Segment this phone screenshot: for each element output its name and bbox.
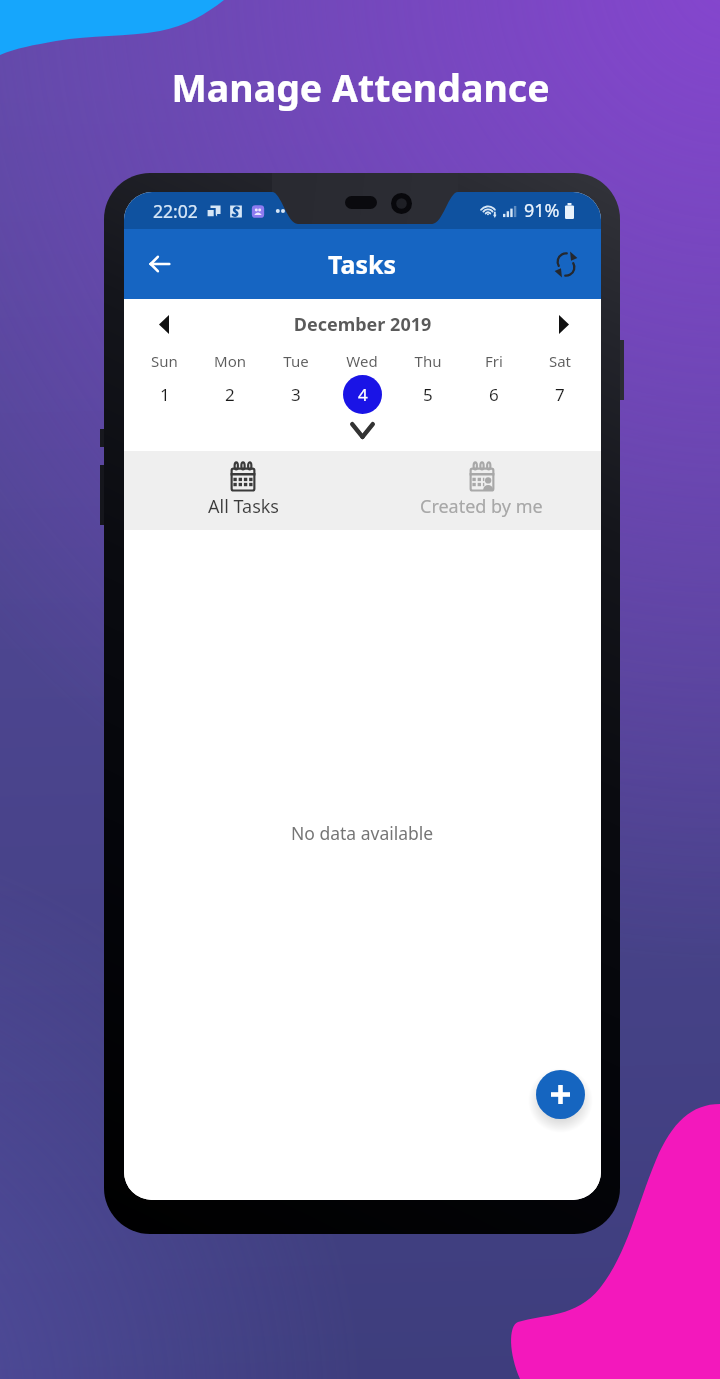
staticText: Thu	[395, 351, 461, 371]
staticText: 1	[160, 383, 170, 406]
staticText: 4	[358, 383, 368, 406]
button[interactable]: 6	[461, 372, 527, 417]
button[interactable]: 5	[395, 372, 461, 417]
button[interactable]: 3	[263, 372, 329, 417]
staticText: 22:02	[153, 199, 198, 223]
staticText: 3	[291, 383, 301, 406]
staticText: Tue	[263, 351, 329, 371]
staticText: Fri	[461, 351, 527, 371]
button[interactable]: All Tasks	[124, 451, 362, 530]
button[interactable]: 1	[132, 372, 197, 417]
staticText: 7	[555, 383, 565, 406]
button[interactable]: Expand calendar	[124, 417, 601, 451]
staticText: Wed	[329, 351, 395, 371]
staticText: Mon	[197, 351, 263, 371]
staticText: 91%	[524, 198, 560, 223]
button[interactable]: Next month	[549, 309, 579, 339]
staticText: Manage Attendance	[171, 62, 550, 113]
staticText: 6	[489, 383, 499, 406]
staticText: 5	[423, 383, 433, 406]
button[interactable]: Add task	[536, 1070, 585, 1119]
staticText: Sat	[527, 351, 593, 371]
staticText: 2	[225, 383, 235, 406]
staticText: Sun	[132, 351, 197, 371]
staticText: Created by me	[420, 494, 543, 519]
staticText: All Tasks	[208, 494, 279, 519]
staticText: Tasks	[328, 247, 397, 281]
button[interactable]: Back	[137, 242, 181, 286]
staticText: December 2019	[176, 312, 549, 337]
button[interactable]: Previous month	[146, 309, 176, 339]
button[interactable]: 7	[527, 372, 593, 417]
button[interactable]: Refresh	[544, 242, 588, 286]
button[interactable]: 4	[329, 372, 395, 417]
button[interactable]: 2	[197, 372, 263, 417]
staticText: No data available	[291, 821, 434, 845]
button[interactable]: Created by me	[362, 451, 601, 530]
